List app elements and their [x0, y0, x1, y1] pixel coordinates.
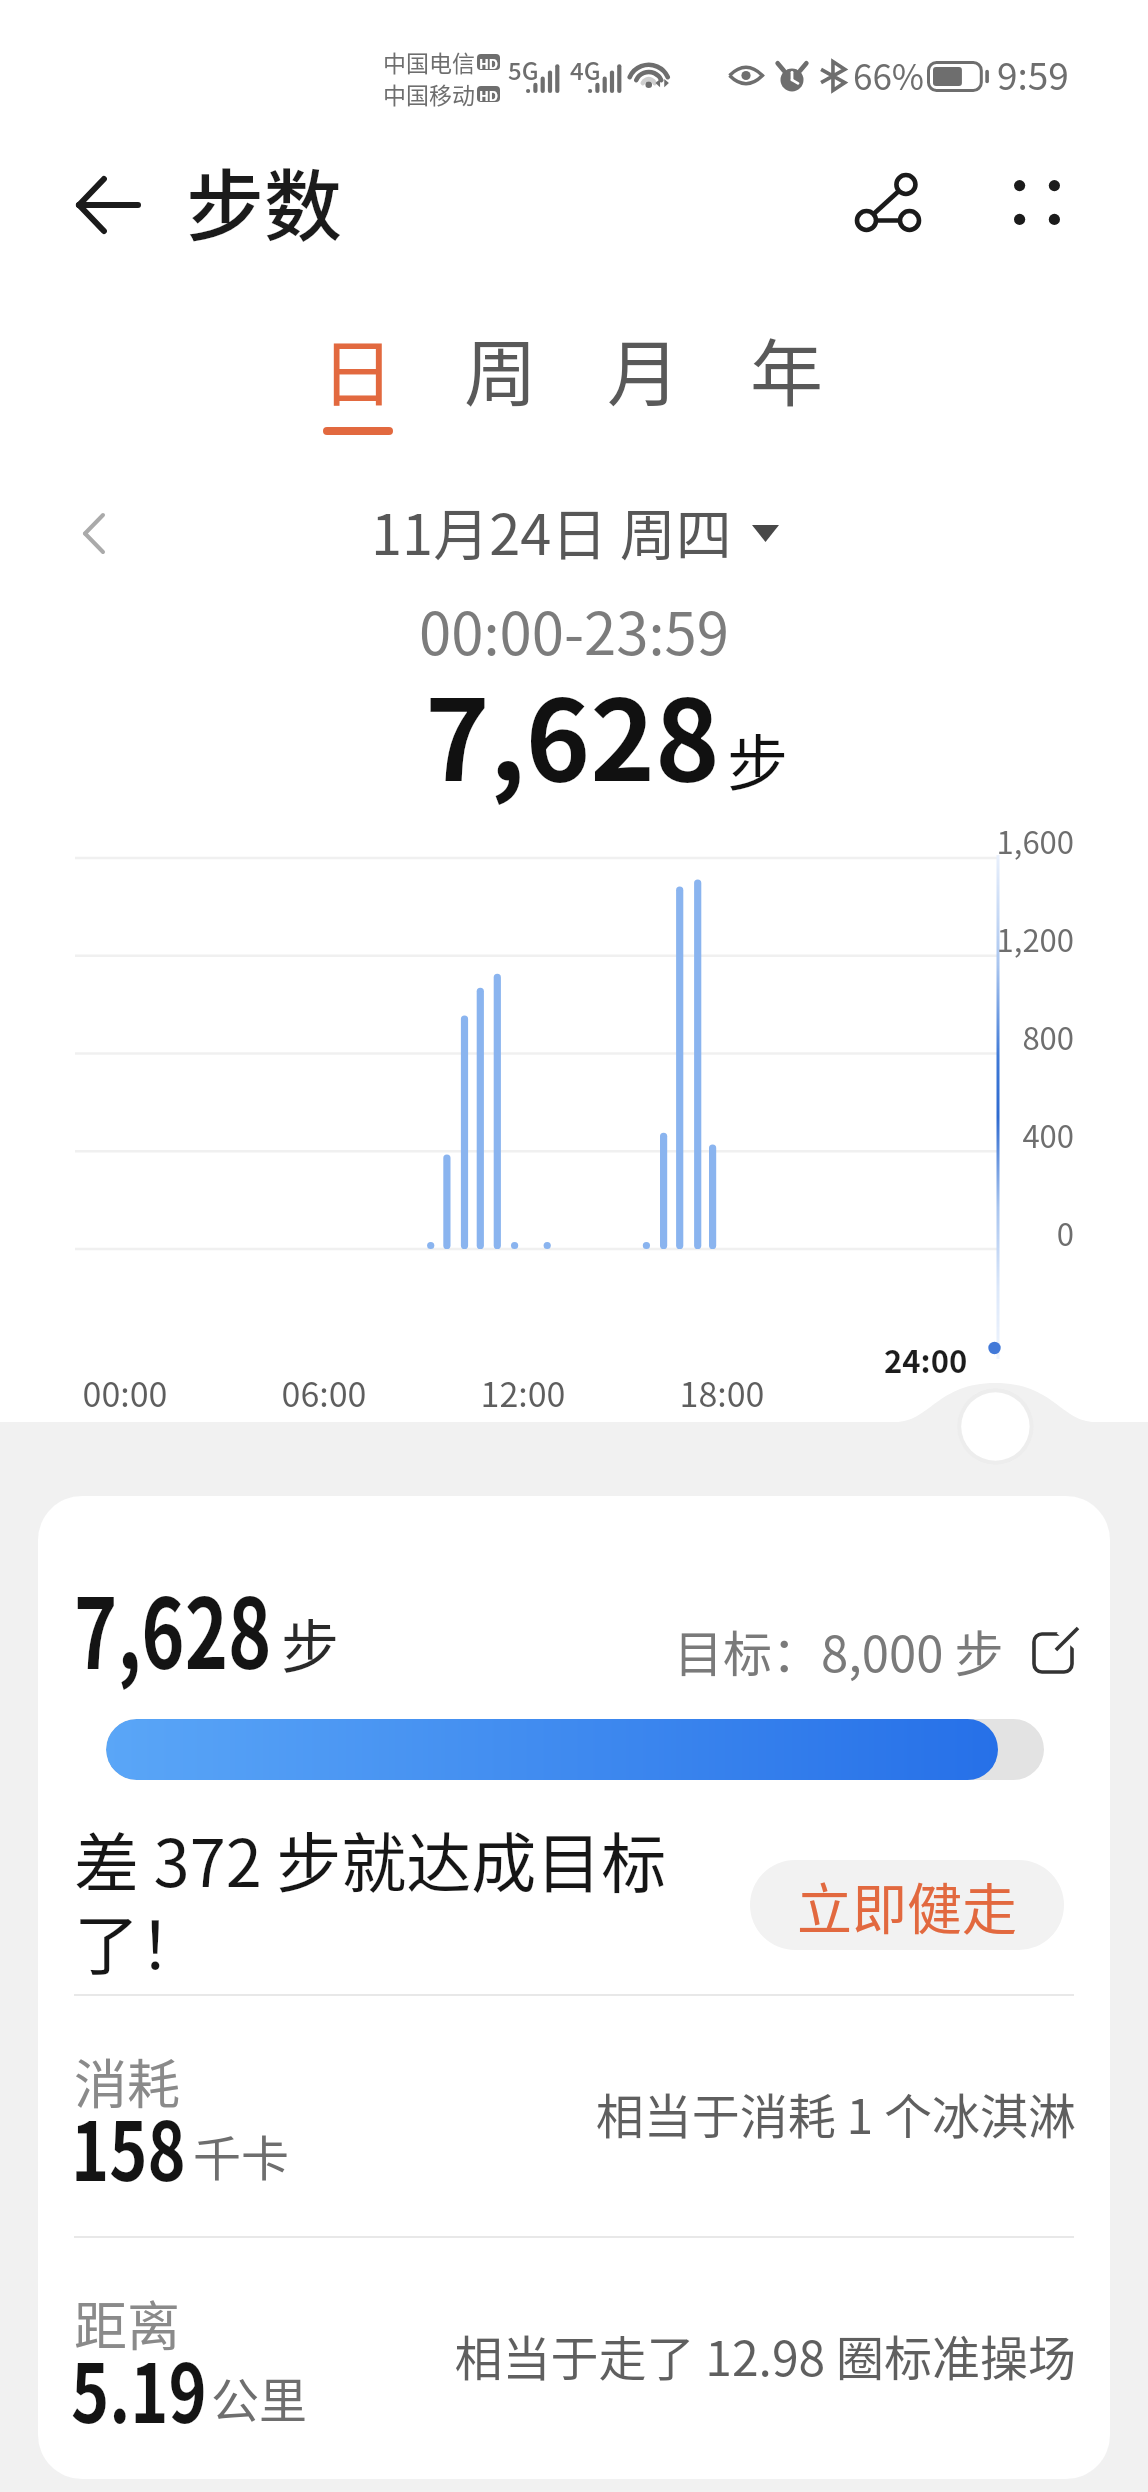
staticText: 4G [570, 52, 601, 87]
button[interactable]: More options [982, 147, 1092, 257]
button[interactable]: 消耗 [74, 2049, 1074, 2229]
staticText: 5G [508, 52, 539, 87]
button[interactable]: 周 [438, 315, 562, 445]
staticText: 24:00 [884, 1337, 968, 1382]
button[interactable]: Previous day [50, 489, 138, 577]
button[interactable]: Start activity [961, 1392, 1030, 1461]
staticText: 7,628 [74, 1556, 272, 1696]
staticText: 800 [944, 1014, 1074, 1059]
staticText: 步 [281, 1601, 340, 1685]
staticText: 11月24日 周四 [371, 490, 732, 571]
staticText: 公里 [211, 2362, 308, 2432]
staticText: 目标：8,000 步 [674, 1615, 1004, 1686]
staticText: 中国移动 [383, 77, 475, 110]
staticText: 周 [464, 315, 537, 421]
button[interactable]: 11月24日 周四 [371, 490, 779, 571]
staticText: 消耗 [74, 2043, 180, 2120]
staticText: 距离 [74, 2285, 180, 2362]
button[interactable]: Share [833, 147, 943, 257]
staticText: 差 372 步就达成目标了！ [74, 1812, 682, 1988]
staticText: 0 [944, 1210, 1074, 1255]
button[interactable]: 月 [581, 315, 705, 445]
staticText: HD [479, 54, 499, 70]
staticText: 1,200 [944, 916, 1074, 961]
button[interactable]: 立即健走 [750, 1860, 1064, 1950]
staticText: 7,628 [425, 651, 720, 813]
staticText: 月 [607, 315, 680, 421]
staticText: 日 [321, 315, 394, 421]
staticText: 12:00 [448, 1368, 598, 1417]
staticText: 中国电信 [383, 45, 475, 78]
staticText: 5.19 [71, 2329, 207, 2446]
staticText: 1,600 [944, 818, 1074, 863]
button[interactable]: 距离 [74, 2291, 1074, 2471]
button[interactable]: 目标：8,000 步 [674, 1615, 1078, 1686]
staticText: 00:00-23:59 [419, 588, 729, 672]
staticText: 9:59 [997, 47, 1069, 101]
staticText: 步数 [186, 145, 343, 258]
staticText: 千卡 [193, 2120, 290, 2190]
staticText: 00:00 [50, 1368, 200, 1417]
button[interactable]: 日 [295, 315, 419, 445]
staticText: 400 [944, 1112, 1074, 1157]
staticText: 66% [853, 49, 925, 100]
staticText: 18:00 [647, 1368, 797, 1417]
button[interactable]: 年 [724, 315, 848, 445]
staticText: 158 [71, 2087, 186, 2204]
staticText: 06:00 [249, 1368, 399, 1417]
staticText: 立即健走 [797, 1865, 1018, 1945]
staticText: 年 [750, 315, 823, 421]
staticText: 相当于消耗 1 个冰淇淋 [404, 2078, 1076, 2148]
button[interactable]: Back [52, 150, 162, 260]
staticText: 相当于走了 12.98 圈标准操场 [404, 2320, 1076, 2390]
staticText: HD [479, 86, 499, 102]
staticText: 步 [727, 715, 789, 803]
